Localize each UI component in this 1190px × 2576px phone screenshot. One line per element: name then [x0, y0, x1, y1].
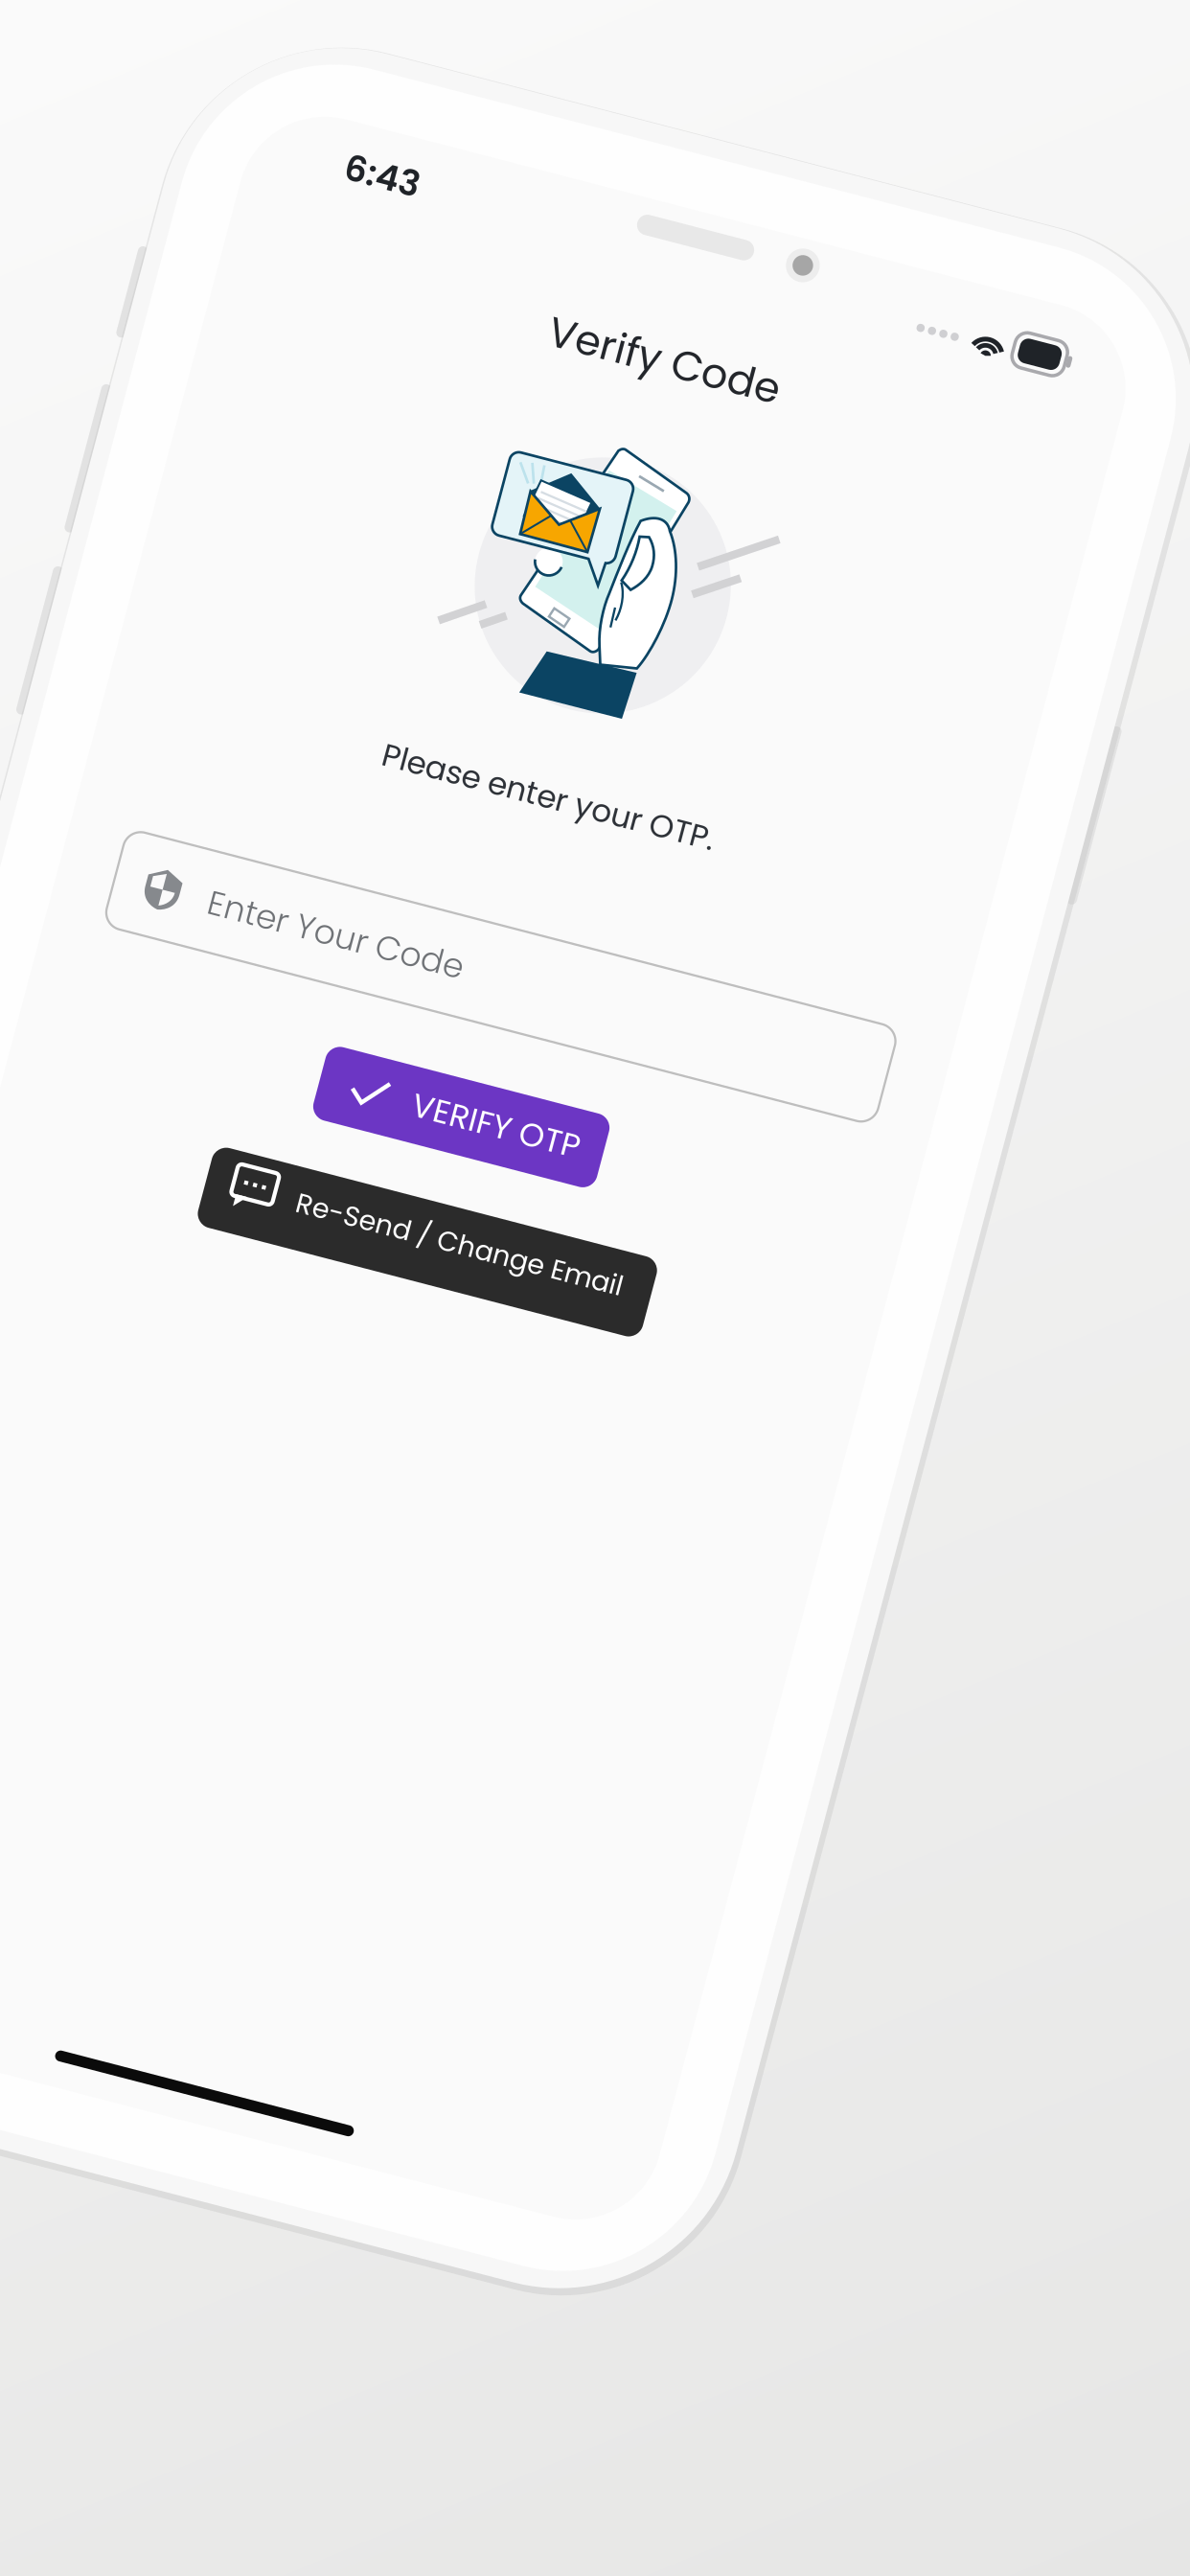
staticText: Verify Code	[439, 162, 751, 237]
staticText: Enter Your Code	[201, 1001, 545, 1062]
staticText: VERIFY OTP	[526, 1190, 751, 1249]
button[interactable]: Enter Your Code	[75, 965, 1115, 1095]
staticText: Please enter your OTP.	[371, 759, 819, 816]
button[interactable]: VERIFY OTP	[401, 1171, 783, 1269]
